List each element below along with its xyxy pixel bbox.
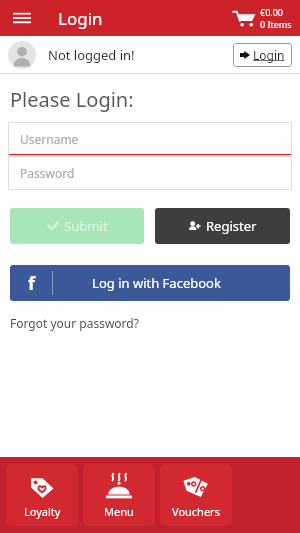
staticText: Login	[58, 7, 103, 30]
staticText: Menu	[104, 504, 134, 519]
staticText: Register	[206, 217, 257, 235]
button[interactable]: Register	[155, 208, 290, 244]
staticText: f	[28, 271, 35, 296]
staticText: Log in with Facebook	[92, 274, 221, 292]
button[interactable]: Forgot your password?	[10, 315, 139, 331]
button[interactable]: Loyalty	[6, 464, 78, 526]
button[interactable]: Login	[233, 43, 292, 67]
staticText: €0.00	[260, 6, 284, 18]
button[interactable]: Open navigation menu	[8, 4, 36, 32]
staticText: Please Login:	[10, 86, 134, 113]
button[interactable]: Submit	[10, 208, 144, 244]
button[interactable]: Password	[8, 156, 292, 190]
button[interactable]: f	[10, 265, 290, 301]
button[interactable]: Vouchers	[160, 464, 232, 526]
staticText: Submit	[64, 217, 108, 235]
staticText: Not logged in!	[48, 46, 135, 64]
staticText: 0 Items	[260, 18, 292, 30]
staticText: Username	[20, 131, 79, 147]
staticText: Login	[253, 47, 285, 63]
button[interactable]: Shopping cart	[232, 6, 292, 30]
staticText: Loyalty	[24, 504, 61, 519]
button[interactable]: Menu	[83, 464, 155, 526]
other: Shopping cart	[232, 6, 256, 30]
staticText: Password	[20, 165, 75, 181]
staticText: Vouchers	[172, 504, 220, 519]
button[interactable]: Username	[8, 122, 292, 156]
